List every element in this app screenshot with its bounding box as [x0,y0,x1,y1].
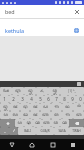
button[interactable]: 3 [18,95,27,103]
staticText: , [4,128,6,134]
button[interactable]: kethula [0,24,84,36]
staticText: 0 [79,96,82,102]
button[interactable]: ꦭ [10,111,20,119]
button[interactable]: ꦚ [40,111,51,119]
staticText: ꦮ [53,119,58,127]
button[interactable]: Keyboard settings [77,82,81,86]
staticText: ꦤ [65,103,70,111]
button[interactable]: ꦗ [10,103,20,111]
button[interactable]: ꦗ [30,111,40,119]
staticText: bed [5,8,15,15]
staticText: 9 [71,96,74,102]
staticText: ꦒ [65,111,70,119]
button[interactable]: ꦎ [48,87,60,95]
button[interactable]: ꦢ [20,111,30,119]
staticText: ꦢ [23,111,28,119]
button[interactable]: 8 [60,95,68,103]
button[interactable]: 9 [68,95,76,103]
button[interactable]: ꦥ [15,119,24,127]
staticText: |\|^_ [68,89,76,93]
button[interactable]: ꦮ [51,119,60,127]
button[interactable]: 6 [44,95,52,103]
staticText: ꦒ [54,103,59,111]
staticText: ꦗ [33,103,38,111]
button[interactable]: 7 [52,95,60,103]
button[interactable]: ꦈ [0,103,10,111]
button[interactable]: ꦡ [24,119,33,127]
staticText: ꦛ [23,103,28,111]
staticText: ꦆ [15,87,21,95]
staticText: 8 [63,96,66,102]
button[interactable]: ꦄ [0,87,12,95]
staticText: kethula [5,27,24,34]
button[interactable]: ꦝ [40,103,51,111]
staticText: ꦈ [28,87,33,95]
staticText: ꦚ [42,111,49,119]
staticText: ꦗ [13,103,18,111]
staticText: TIRAH [72,129,81,133]
staticText: / [13,128,15,134]
button[interactable]: Back [3,139,20,150]
button[interactable]: Shift [0,119,15,127]
staticText: 2 [12,96,15,102]
button[interactable]: ꦥꦶ [73,103,84,111]
staticText: ꦥꦶ [77,103,81,111]
button[interactable]: GUAJR [36,127,54,135]
button[interactable]: 1 [0,95,9,103]
button[interactable]: ꦒ [62,111,73,119]
staticText: 1 [3,96,6,102]
button[interactable]: Home [23,139,40,150]
button[interactable]: 2 [9,95,18,103]
staticText: ꦕ [35,119,40,127]
button[interactable]: ꦗ [30,103,40,111]
button[interactable]: ꦌ [36,87,48,95]
staticText: ꦩ [54,111,59,119]
staticText: BALI [24,129,31,133]
staticText: ꦧ [76,111,82,119]
staticText: 7 [55,96,58,102]
staticText: ꦎ [52,87,57,95]
staticText: ꦥ [3,111,8,119]
button[interactable]: Clear search [72,7,81,16]
staticText: 4 [30,96,33,102]
staticText: ꦥ [17,119,22,127]
staticText: ꦡ [26,119,31,127]
button[interactable]: bed [0,5,84,18]
button[interactable]: ꦒ [51,103,62,111]
button[interactable]: ꦆ [12,87,24,95]
button[interactable]: Backspace [69,119,84,127]
button[interactable]: ꦤ [62,103,73,111]
staticText: ꦕ [62,119,67,127]
button[interactable]: , [0,127,9,135]
button[interactable]: |\|^_ [60,87,84,95]
staticText: 5 [39,96,42,102]
staticText: ꦗ [33,111,38,119]
button[interactable]: ꦕ [60,119,69,127]
button[interactable]: ꦚ [42,119,51,127]
staticText: ꦭ [12,111,18,119]
button[interactable]: TIRAH [69,127,84,135]
staticText: ꦈ [3,103,8,111]
staticText: SASA [58,129,66,133]
button[interactable]: ꦩ [51,111,62,119]
button[interactable]: SASA [54,127,69,135]
staticText: ꦚ [43,119,50,127]
button[interactable]: ꦈ [24,87,36,95]
staticText: 3 [21,96,24,102]
staticText: ꦄ [3,87,9,95]
button[interactable]: Switch keyboard [64,139,81,150]
button[interactable]: Recent apps [44,139,61,150]
button[interactable]: ꦥ [0,111,10,119]
button[interactable]: ꦛ [20,103,30,111]
button[interactable]: ꦕ [33,119,42,127]
button[interactable]: Search the web [72,26,81,35]
button[interactable]: BALI [18,127,36,135]
button[interactable]: 5 [36,95,44,103]
button[interactable]: ꦧ [73,111,84,119]
button[interactable]: / [9,127,18,135]
staticText: ꦌ [40,87,44,95]
staticText: ꦝ [43,103,48,111]
staticText: GUAJR [40,129,50,133]
button[interactable]: 0 [76,95,84,103]
button[interactable]: 4 [27,95,36,103]
